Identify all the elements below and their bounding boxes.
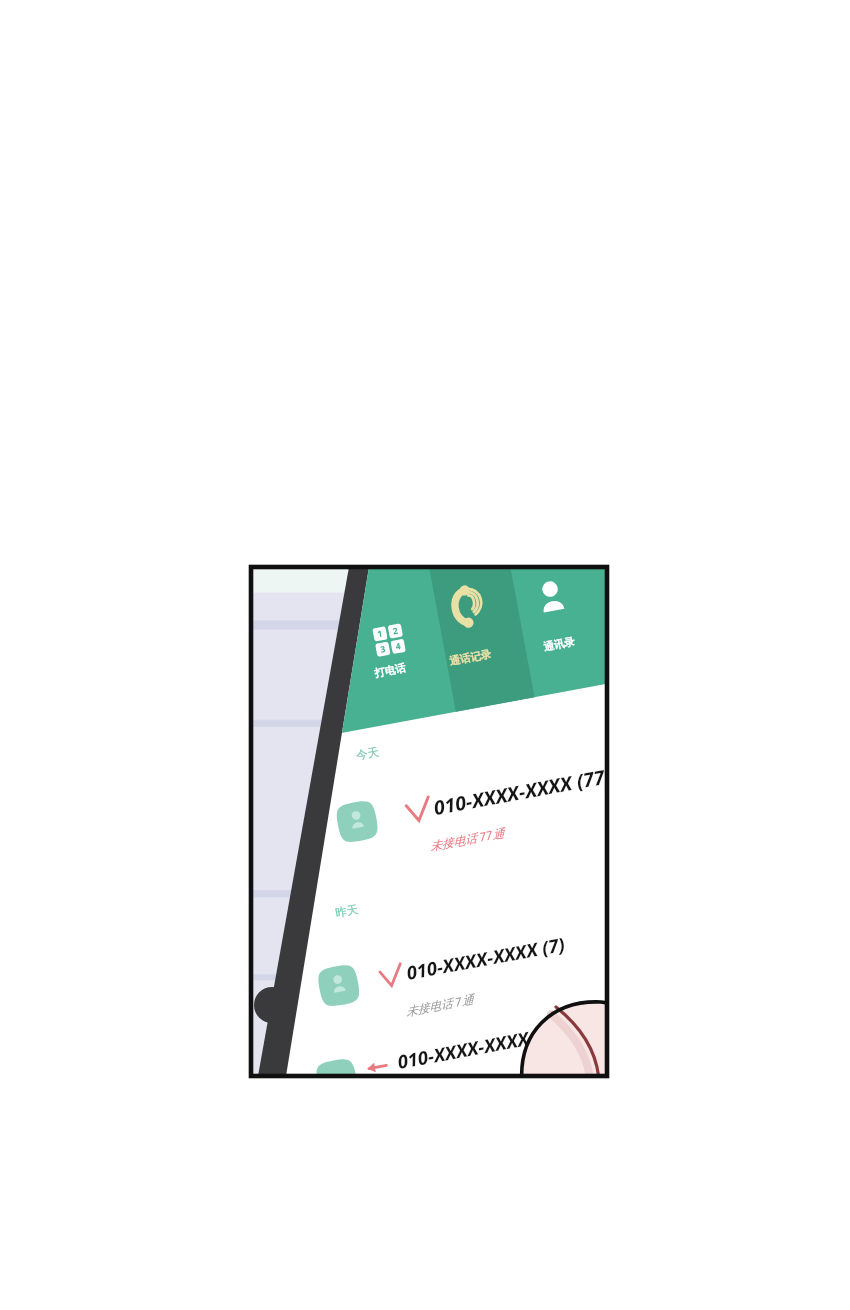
button[interactable]: Comic panel: phone call log screen (0, 0, 850, 1310)
